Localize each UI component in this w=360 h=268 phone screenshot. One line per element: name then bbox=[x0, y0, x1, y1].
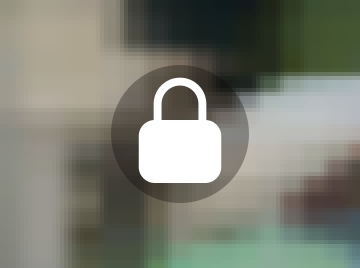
button[interactable]: Locked content bbox=[111, 65, 249, 203]
